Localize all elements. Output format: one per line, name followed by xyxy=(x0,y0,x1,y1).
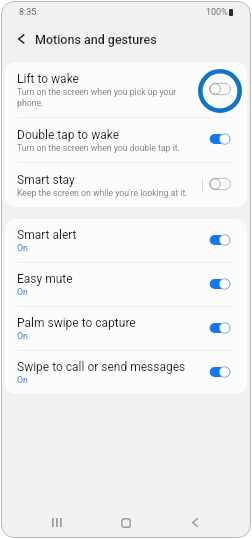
staticText: Swipe to call or send messages xyxy=(17,360,186,374)
button[interactable]: Swipe to call or send messages xyxy=(5,351,247,394)
button[interactable]: Lift to wake xyxy=(5,62,247,117)
button[interactable]: On xyxy=(205,314,235,344)
button[interactable]: Navigate up xyxy=(7,25,35,53)
staticText: Easy mute xyxy=(17,272,73,286)
button[interactable]: On xyxy=(205,125,235,155)
staticText: Palm swipe to capture xyxy=(17,316,136,330)
staticText: Turn on the screen when you double tap i… xyxy=(17,143,180,153)
staticText: Lift to wake xyxy=(17,72,79,86)
staticText: 8:35 xyxy=(19,7,37,18)
button[interactable]: Recent apps xyxy=(41,514,72,531)
button[interactable]: Back xyxy=(179,514,210,531)
staticText: Turn on the screen when you pick up your… xyxy=(17,87,201,108)
staticText: 100% xyxy=(206,7,228,18)
staticText: On xyxy=(17,331,28,341)
button[interactable]: Easy mute xyxy=(5,263,247,306)
staticText: Smart alert xyxy=(17,228,77,242)
button[interactable]: Home xyxy=(110,514,141,531)
staticText: Double tap to wake xyxy=(17,128,119,142)
staticText: Motions and gestures xyxy=(35,32,157,47)
staticText: On xyxy=(17,287,28,297)
button[interactable]: On xyxy=(205,226,235,256)
staticText: On xyxy=(17,243,28,253)
staticText: On xyxy=(17,375,28,385)
button[interactable]: On xyxy=(205,358,235,388)
staticText: Smart stay xyxy=(17,173,75,187)
button[interactable]: On xyxy=(205,270,235,300)
staticText: Keep the screen on while you're looking … xyxy=(17,188,188,198)
button[interactable]: Smart stay xyxy=(5,163,247,207)
button[interactable]: Off xyxy=(205,170,235,200)
button[interactable]: Double tap to wake xyxy=(5,118,247,162)
button[interactable]: Palm swipe to capture xyxy=(5,307,247,350)
button[interactable]: Smart alert xyxy=(5,219,247,262)
button[interactable]: Off xyxy=(205,75,235,105)
